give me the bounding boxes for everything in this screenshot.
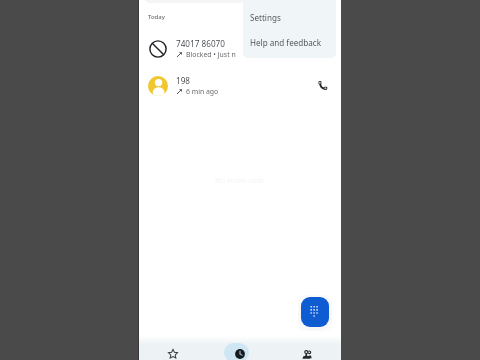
staticText: Today <box>148 13 165 21</box>
staticText: 198 <box>176 75 191 86</box>
button[interactable]: 74017 86070 <box>138 32 341 66</box>
button[interactable]: Call back <box>313 76 332 95</box>
staticText: Settings <box>250 12 281 23</box>
button[interactable]: Contacts <box>284 344 330 360</box>
button[interactable]: 198 <box>138 69 341 103</box>
staticText: Blocked • Just n <box>186 50 236 59</box>
button[interactable]: Help and feedback <box>243 31 336 56</box>
button[interactable]: Recents <box>217 344 263 360</box>
staticText: 6 min ago <box>186 87 219 96</box>
staticText: Help and feedback <box>250 37 321 48</box>
staticText: 74017 86070 <box>176 38 225 49</box>
button[interactable]: Open dialpad <box>301 297 329 327</box>
button[interactable]: Favorites <box>150 344 196 360</box>
button[interactable]: Settings <box>243 6 336 31</box>
